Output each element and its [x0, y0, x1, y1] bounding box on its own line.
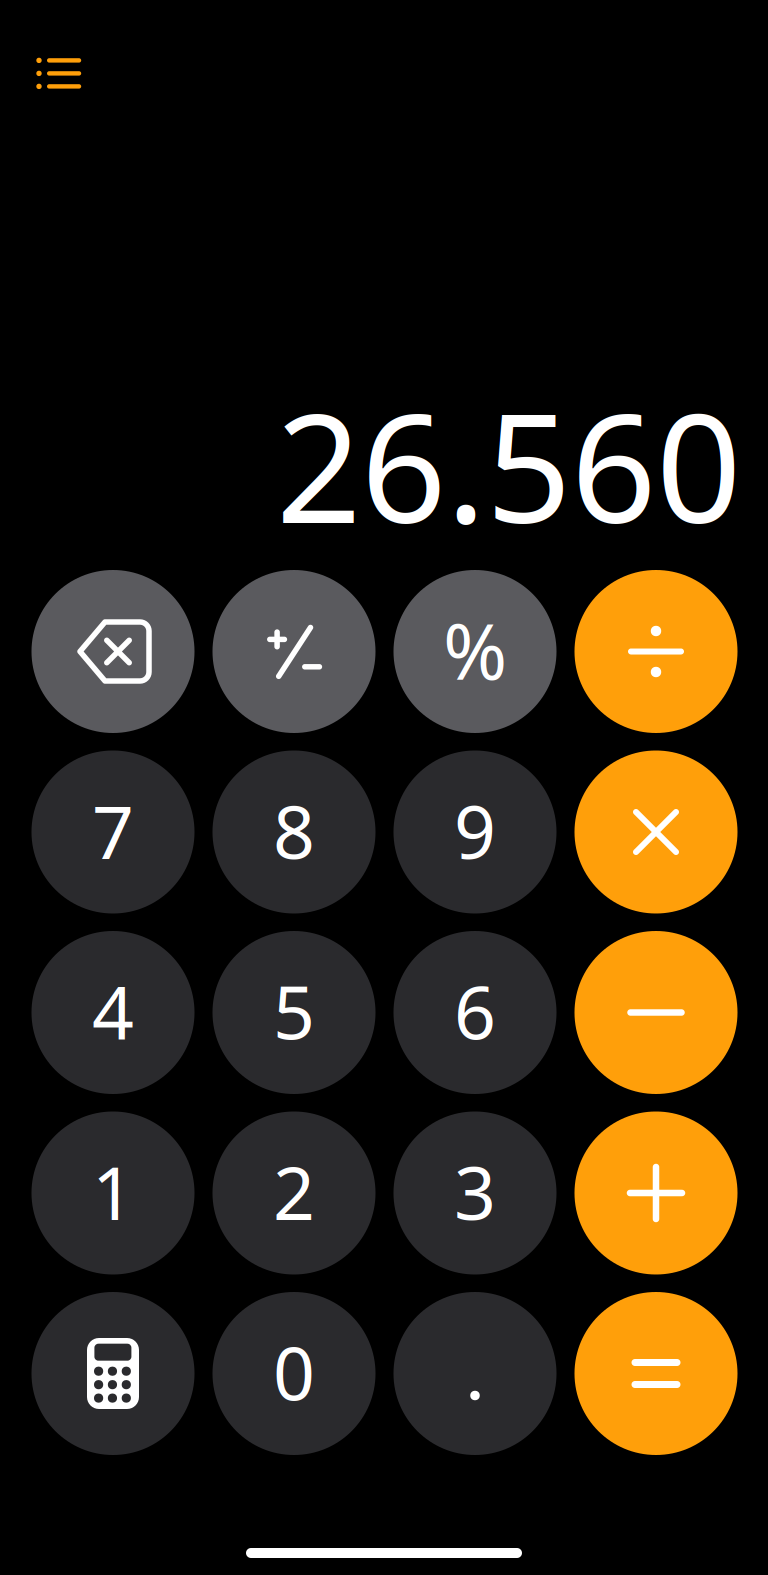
- staticText: 0: [273, 1323, 315, 1421]
- button[interactable]: Subtract: [574, 931, 737, 1094]
- button[interactable]: Divide: [574, 570, 737, 733]
- staticText: 9: [454, 782, 496, 879]
- button[interactable]: History: [0, 0, 108, 120]
- staticText: 26.560: [276, 366, 741, 564]
- button[interactable]: 1: [31, 1111, 194, 1274]
- button[interactable]: Delete: [31, 570, 194, 733]
- staticText: %: [443, 598, 507, 701]
- button[interactable]: %: [393, 570, 556, 733]
- button[interactable]: 7: [31, 750, 194, 913]
- button[interactable]: Plus Minus: [212, 570, 375, 733]
- staticText: 5: [273, 962, 315, 1060]
- button[interactable]: 3: [393, 1111, 556, 1274]
- staticText: 8: [273, 782, 315, 879]
- staticText: 4: [92, 962, 134, 1060]
- button[interactable]: Add: [574, 1111, 737, 1274]
- button[interactable]: 2: [212, 1111, 375, 1274]
- button[interactable]: 8: [212, 750, 375, 913]
- button[interactable]: 0: [212, 1292, 375, 1455]
- button[interactable]: Equals: [574, 1292, 737, 1455]
- button[interactable]: 4: [31, 931, 194, 1094]
- staticText: 6: [454, 962, 496, 1060]
- button[interactable]: 5: [212, 931, 375, 1094]
- button[interactable]: Multiply: [574, 750, 737, 913]
- staticText: 7: [92, 782, 134, 879]
- button[interactable]: 6: [393, 931, 556, 1094]
- staticText: 2: [273, 1143, 315, 1240]
- staticText: 1: [92, 1143, 134, 1240]
- button[interactable]: 9: [393, 750, 556, 913]
- button[interactable]: Calculator modes: [31, 1292, 194, 1455]
- staticText: 3: [454, 1143, 496, 1240]
- button[interactable]: Decimal point: [393, 1292, 556, 1455]
